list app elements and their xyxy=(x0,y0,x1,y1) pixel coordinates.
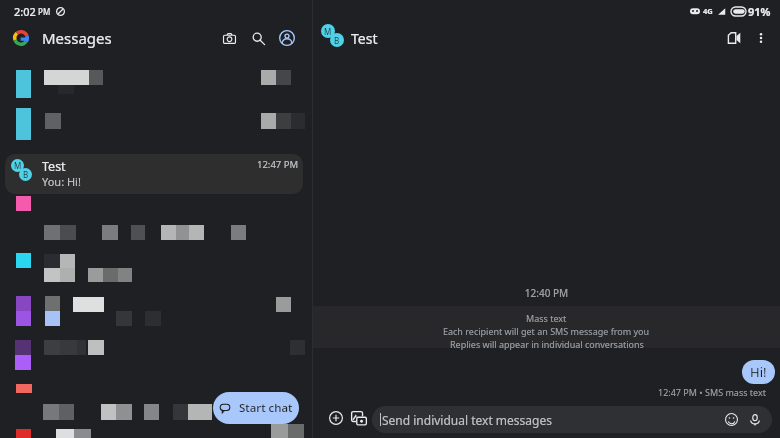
button[interactable] xyxy=(0,244,312,290)
staticText: You: Hi! xyxy=(42,174,81,189)
button[interactable]: Gallery xyxy=(347,406,371,430)
staticText: PM xyxy=(38,6,51,17)
staticText: Messages xyxy=(42,28,112,48)
staticText: 12:40 PM xyxy=(313,286,780,300)
staticText: 91% xyxy=(748,4,771,19)
button[interactable] xyxy=(0,62,312,108)
staticText: M xyxy=(324,26,332,37)
staticText: Test xyxy=(351,29,378,48)
staticText: Mass text xyxy=(526,312,567,324)
staticText: Replies will appear in individual conver… xyxy=(450,338,644,350)
button[interactable]: Camera xyxy=(216,25,242,51)
button[interactable] xyxy=(0,290,312,334)
staticText: Test xyxy=(42,158,66,175)
staticText: B xyxy=(23,169,29,180)
staticText: Send individual text messages xyxy=(382,412,552,428)
staticText: Start chat xyxy=(239,400,293,416)
staticText: Each recipient will get an SMS message f… xyxy=(443,325,650,337)
button[interactable] xyxy=(0,334,312,379)
button[interactable]: Account xyxy=(274,25,300,51)
button[interactable]: Add attachment xyxy=(324,406,348,430)
button[interactable] xyxy=(0,379,312,423)
staticText: 12:47 PM • SMS mass text xyxy=(313,386,766,398)
staticText: 2:02 xyxy=(14,4,36,19)
staticText: 12:47 PM xyxy=(257,158,299,171)
button[interactable]: Send individual text messages xyxy=(372,406,772,433)
button[interactable]: Video call xyxy=(721,25,747,51)
button[interactable] xyxy=(0,196,312,244)
button[interactable]: More options xyxy=(748,25,774,51)
button[interactable]: Start chat xyxy=(213,392,299,424)
button[interactable]: M xyxy=(5,154,303,194)
staticText: B xyxy=(334,35,340,46)
button[interactable]: Search xyxy=(245,25,271,51)
staticText: Hi! xyxy=(750,363,767,381)
staticText: 4G xyxy=(703,6,713,16)
staticText: M xyxy=(14,160,22,171)
button[interactable]: Hi! xyxy=(742,360,775,384)
button[interactable] xyxy=(0,108,312,154)
